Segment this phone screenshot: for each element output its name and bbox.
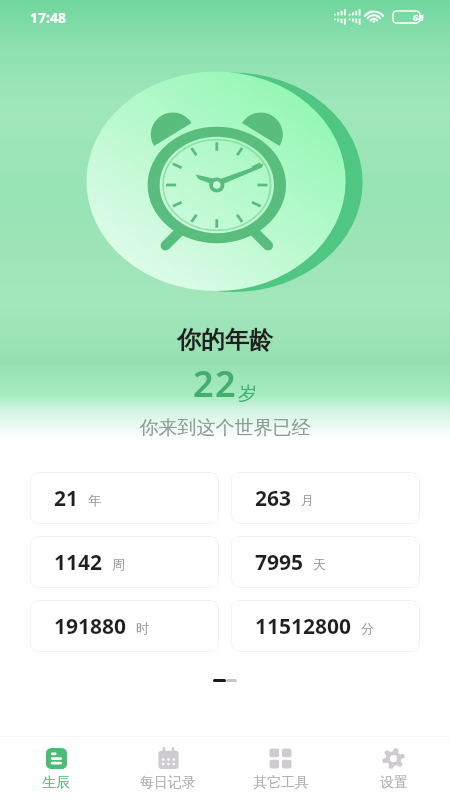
staticText: 每日记录	[140, 774, 196, 792]
staticText: 生辰	[42, 774, 70, 792]
button[interactable]: 263	[231, 472, 420, 524]
staticText: 周	[112, 556, 125, 572]
staticText: 11512800	[255, 612, 352, 641]
staticText: 时	[136, 620, 149, 636]
staticText: 7995	[255, 548, 304, 577]
button[interactable]: 11512800	[231, 600, 420, 652]
staticText: 68	[413, 11, 424, 23]
staticText: 分	[361, 620, 374, 636]
staticText: 191880	[54, 612, 127, 641]
staticText: 21	[54, 484, 79, 513]
button[interactable]: 每日记录	[112, 740, 224, 797]
staticText: 22	[193, 359, 238, 408]
staticText: 设置	[380, 774, 408, 792]
staticText: 其它工具	[253, 774, 309, 792]
staticText: 月	[301, 492, 314, 508]
staticText: 你的年龄	[0, 325, 450, 355]
staticText: 你来到这个世界已经	[0, 416, 450, 440]
staticText: 天	[313, 556, 326, 572]
staticText: 263	[255, 484, 292, 513]
staticText: 年	[88, 492, 101, 508]
button[interactable]: 191880	[30, 600, 219, 652]
button[interactable]: 生辰	[0, 740, 112, 797]
staticText: 岁	[238, 382, 257, 406]
button[interactable]: 其它工具	[224, 740, 337, 797]
staticText: 17:48	[30, 8, 66, 27]
button[interactable]: 1142	[30, 536, 219, 588]
staticText: 1142	[54, 548, 103, 577]
button[interactable]: 21	[30, 472, 219, 524]
button[interactable]: 设置	[337, 740, 450, 797]
button[interactable]: 7995	[231, 536, 420, 588]
